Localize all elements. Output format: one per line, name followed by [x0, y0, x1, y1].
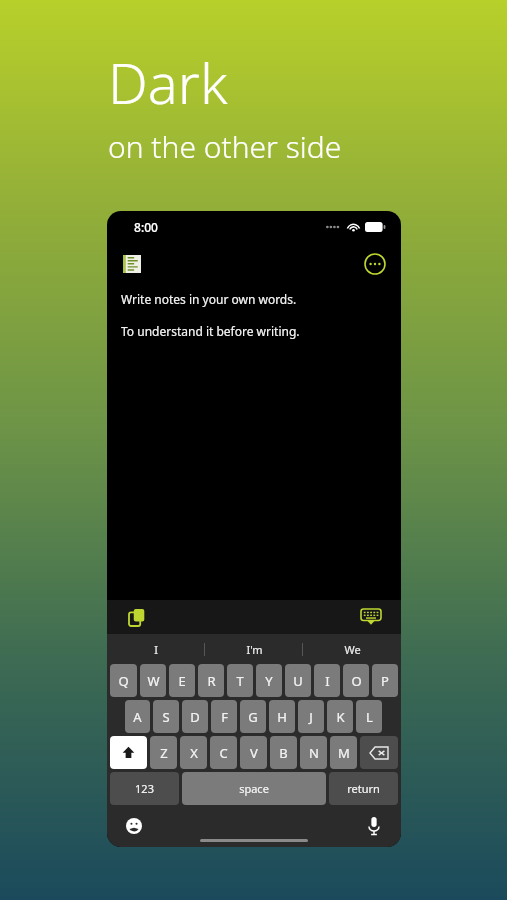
staticText: N: [309, 744, 319, 762]
button[interactable]: F: [211, 700, 237, 733]
button[interactable]: V: [240, 736, 267, 769]
staticText: U: [293, 672, 303, 690]
staticText: G: [248, 708, 258, 726]
button[interactable]: Y: [256, 664, 282, 697]
button[interactable]: 123: [110, 772, 179, 805]
button[interactable]: I: [107, 634, 205, 664]
button[interactable]: Z: [150, 736, 177, 769]
staticText: J: [309, 708, 313, 726]
button[interactable]: M: [330, 736, 357, 769]
staticText: I: [325, 672, 330, 690]
staticText: M: [338, 744, 350, 762]
button[interactable]: Voice input: [361, 813, 387, 839]
staticText: A: [133, 708, 142, 726]
button[interactable]: I: [314, 664, 340, 697]
button[interactable]: Q: [110, 664, 137, 697]
button[interactable]: K: [327, 700, 353, 733]
button[interactable]: E: [169, 664, 195, 697]
staticText: return: [347, 781, 380, 796]
button[interactable]: Note: [119, 251, 145, 277]
button[interactable]: S: [153, 700, 179, 733]
staticText: I'm: [246, 642, 263, 657]
button[interactable]: Copy: [123, 603, 151, 631]
staticText: on the other side: [108, 126, 342, 167]
staticText: S: [162, 708, 170, 726]
button[interactable]: P: [372, 664, 398, 697]
staticText: Y: [265, 672, 273, 690]
button[interactable]: C: [210, 736, 237, 769]
button[interactable]: More options: [361, 250, 389, 278]
staticText: T: [236, 672, 244, 690]
button[interactable]: space: [182, 772, 326, 805]
button[interactable]: W: [140, 664, 166, 697]
button[interactable]: Keyboard: [357, 603, 385, 631]
button[interactable]: Emoji: [121, 813, 147, 839]
button[interactable]: O: [343, 664, 369, 697]
staticText: D: [190, 708, 200, 726]
staticText: 123: [135, 781, 154, 796]
button[interactable]: G: [240, 700, 266, 733]
button[interactable]: H: [269, 700, 295, 733]
staticText: O: [351, 672, 362, 690]
staticText: E: [178, 672, 186, 690]
button[interactable]: D: [182, 700, 208, 733]
button[interactable]: U: [285, 664, 311, 697]
button[interactable]: J: [298, 700, 324, 733]
button[interactable]: X: [180, 736, 207, 769]
staticText: P: [381, 672, 389, 690]
staticText: V: [250, 744, 258, 762]
staticText: K: [336, 708, 345, 726]
button[interactable]: T: [227, 664, 253, 697]
button[interactable]: A: [125, 700, 150, 733]
staticText: W: [147, 672, 160, 690]
button[interactable]: Backspace: [360, 736, 398, 769]
staticText: Dark: [108, 44, 228, 120]
button[interactable]: Shift: [110, 736, 147, 769]
button[interactable]: I'm: [205, 634, 303, 664]
staticText: F: [221, 708, 228, 726]
staticText: Z: [160, 744, 168, 762]
staticText: R: [207, 672, 216, 690]
staticText: L: [366, 708, 373, 726]
button[interactable]: L: [356, 700, 382, 733]
button[interactable]: B: [270, 736, 297, 769]
staticText: Write notes in your own words.: [121, 291, 297, 307]
button[interactable]: R: [198, 664, 224, 697]
staticText: 8:00: [134, 219, 158, 235]
staticText: B: [279, 744, 288, 762]
staticText: C: [219, 744, 228, 762]
staticText: H: [277, 708, 287, 726]
staticText: X: [190, 744, 198, 762]
staticText: Q: [118, 672, 129, 690]
staticText: I: [154, 642, 158, 657]
staticText: To understand it before writing.: [121, 323, 300, 339]
button[interactable]: We: [303, 634, 401, 664]
button[interactable]: return: [329, 772, 398, 805]
staticText: space: [239, 781, 269, 796]
staticText: We: [344, 642, 361, 657]
button[interactable]: N: [300, 736, 327, 769]
